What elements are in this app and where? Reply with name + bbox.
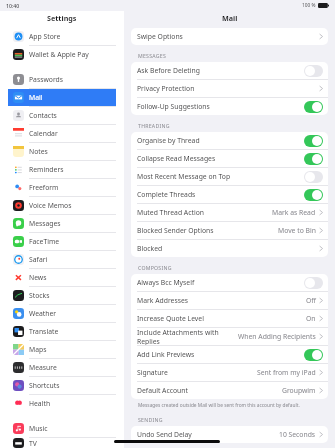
button[interactable]: Messages: [8, 215, 116, 232]
button[interactable]: Blocked: [131, 240, 328, 257]
staticText: Organise by Thread: [137, 136, 304, 145]
button[interactable]: TV: [8, 438, 116, 448]
button[interactable]: News: [8, 269, 116, 286]
button[interactable]: Collapse Read Messages: [131, 150, 328, 167]
button[interactable]: Health: [8, 395, 116, 412]
staticText: Measure: [29, 363, 57, 372]
button[interactable]: Reminders: [8, 161, 116, 178]
button[interactable]: Maps: [8, 341, 116, 358]
button[interactable]: Always Bcc Myself: [131, 274, 328, 291]
staticText: Music: [29, 424, 48, 433]
staticText: Groupwim: [282, 386, 316, 395]
staticText: 10 Seconds: [279, 430, 316, 439]
button[interactable]: Stocks: [8, 287, 116, 304]
button[interactable]: Shortcuts: [8, 377, 116, 394]
staticText: Messages created outside Mail will be se…: [138, 402, 300, 409]
button[interactable]: Blocked Sender Options: [131, 222, 328, 239]
staticText: Follow-Up Suggestions: [137, 102, 304, 111]
button[interactable]: Organise by Thread: [131, 132, 328, 149]
staticText: Calendar: [29, 129, 58, 138]
staticText: Mark as Read: [272, 208, 316, 217]
staticText: Default Account: [137, 386, 282, 395]
staticText: Weather: [29, 309, 57, 318]
staticText: Complete Threads: [137, 190, 304, 199]
button[interactable]: App Store: [8, 28, 116, 45]
staticText: Mail: [222, 13, 238, 23]
button[interactable]: Complete Threads: [131, 186, 328, 203]
button[interactable]: Ask Before Deleting: [131, 62, 328, 79]
staticText: Ask Before Deleting: [137, 66, 304, 75]
button[interactable]: Toggle off: [304, 171, 323, 183]
button[interactable]: Translate: [8, 323, 116, 340]
staticText: Blocked: [137, 244, 319, 253]
staticText: TV: [29, 439, 37, 448]
staticText: Mark Addresses: [137, 296, 306, 305]
staticText: Freeform: [29, 183, 59, 192]
button[interactable]: Weather: [8, 305, 116, 322]
staticText: On: [306, 314, 316, 323]
staticText: 10:40: [6, 2, 20, 9]
button[interactable]: Freeform: [8, 179, 116, 196]
staticText: Stocks: [29, 291, 50, 300]
staticText: Move to Bin: [278, 226, 316, 235]
button[interactable]: Contacts: [8, 107, 116, 124]
staticText: Settings: [47, 13, 77, 23]
staticText: Include Attachments with Replies: [137, 328, 238, 345]
staticText: THREADING: [138, 122, 170, 129]
staticText: Voice Memos: [29, 201, 72, 210]
staticText: Undo Send Delay: [137, 430, 279, 439]
staticText: Maps: [29, 345, 47, 354]
staticText: MESSAGES: [138, 52, 167, 59]
button[interactable]: Toggle on: [304, 189, 323, 201]
staticText: COMPOSING: [138, 264, 172, 271]
button[interactable]: Toggle on: [304, 349, 323, 361]
button[interactable]: Mark Addresses: [131, 292, 328, 309]
button[interactable]: Wallet & Apple Pay: [8, 46, 116, 63]
staticText: SENDING: [138, 416, 163, 423]
staticText: FaceTime: [29, 237, 60, 246]
button[interactable]: Increase Quote Level: [131, 310, 328, 327]
staticText: Wallet & Apple Pay: [29, 50, 89, 59]
staticText: Off: [306, 296, 316, 305]
button[interactable]: Toggle on: [304, 153, 323, 165]
staticText: Passwords: [29, 75, 63, 84]
button[interactable]: Muted Thread Action: [131, 204, 328, 221]
staticText: Shortcuts: [29, 381, 60, 390]
staticText: Mail: [29, 93, 43, 102]
button[interactable]: Undo Send Delay: [131, 426, 328, 443]
button[interactable]: Add Link Previews: [131, 346, 328, 363]
staticText: Contacts: [29, 111, 57, 120]
button[interactable]: Passwords: [8, 71, 116, 88]
button[interactable]: Toggle off: [304, 277, 323, 289]
staticText: Translate: [29, 327, 59, 336]
staticText: Increase Quote Level: [137, 314, 306, 323]
staticText: Collapse Read Messages: [137, 154, 304, 163]
staticText: Health: [29, 399, 51, 408]
staticText: Privacy Protection: [137, 84, 319, 93]
staticText: App Store: [29, 32, 61, 41]
button[interactable]: Safari: [8, 251, 116, 268]
button[interactable]: Signature: [131, 364, 328, 381]
button[interactable]: Swipe Options: [131, 28, 328, 45]
button[interactable]: Toggle off: [304, 65, 323, 77]
button[interactable]: Music: [8, 420, 116, 437]
staticText: Muted Thread Action: [137, 208, 272, 217]
button[interactable]: Most Recent Message on Top: [131, 168, 328, 185]
button[interactable]: Privacy Protection: [131, 80, 328, 97]
button[interactable]: Follow-Up Suggestions: [131, 98, 328, 115]
staticText: Blocked Sender Options: [137, 226, 278, 235]
staticText: Messages: [29, 219, 61, 228]
button[interactable]: Include Attachments with Replies: [131, 328, 328, 345]
button[interactable]: FaceTime: [8, 233, 116, 250]
button[interactable]: Notes: [8, 143, 116, 160]
staticText: Notes: [29, 147, 48, 156]
button[interactable]: Default Account: [131, 382, 328, 399]
staticText: Safari: [29, 255, 48, 264]
button[interactable]: Voice Memos: [8, 197, 116, 214]
button[interactable]: Mail: [8, 89, 116, 106]
button[interactable]: Calendar: [8, 125, 116, 142]
button[interactable]: Measure: [8, 359, 116, 376]
staticText: Signature: [137, 368, 257, 377]
button[interactable]: Toggle on: [304, 135, 323, 147]
button[interactable]: Toggle on: [304, 101, 323, 113]
